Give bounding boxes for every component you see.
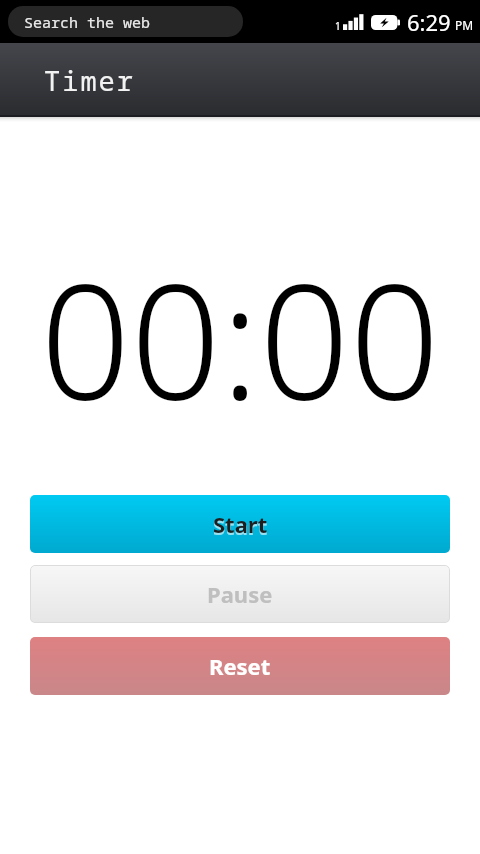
other: Signal strength (343, 14, 365, 30)
button[interactable]: Search the web (8, 6, 243, 37)
staticText: Start (213, 511, 268, 541)
staticText: Pause (207, 579, 273, 609)
staticText: Start (213, 509, 268, 539)
staticText: Reset (209, 651, 271, 681)
button[interactable]: Pause (30, 565, 450, 623)
button[interactable]: Reset (30, 637, 450, 695)
staticText: Timer (44, 62, 135, 99)
staticText: 00:00 (40, 230, 440, 445)
staticText: 1 (335, 19, 341, 33)
button[interactable]: Start (30, 495, 450, 553)
staticText: Search the web (24, 12, 151, 32)
staticText: PM (455, 17, 474, 33)
other: Battery charging (371, 15, 400, 30)
staticText: 6:29 (407, 7, 451, 37)
